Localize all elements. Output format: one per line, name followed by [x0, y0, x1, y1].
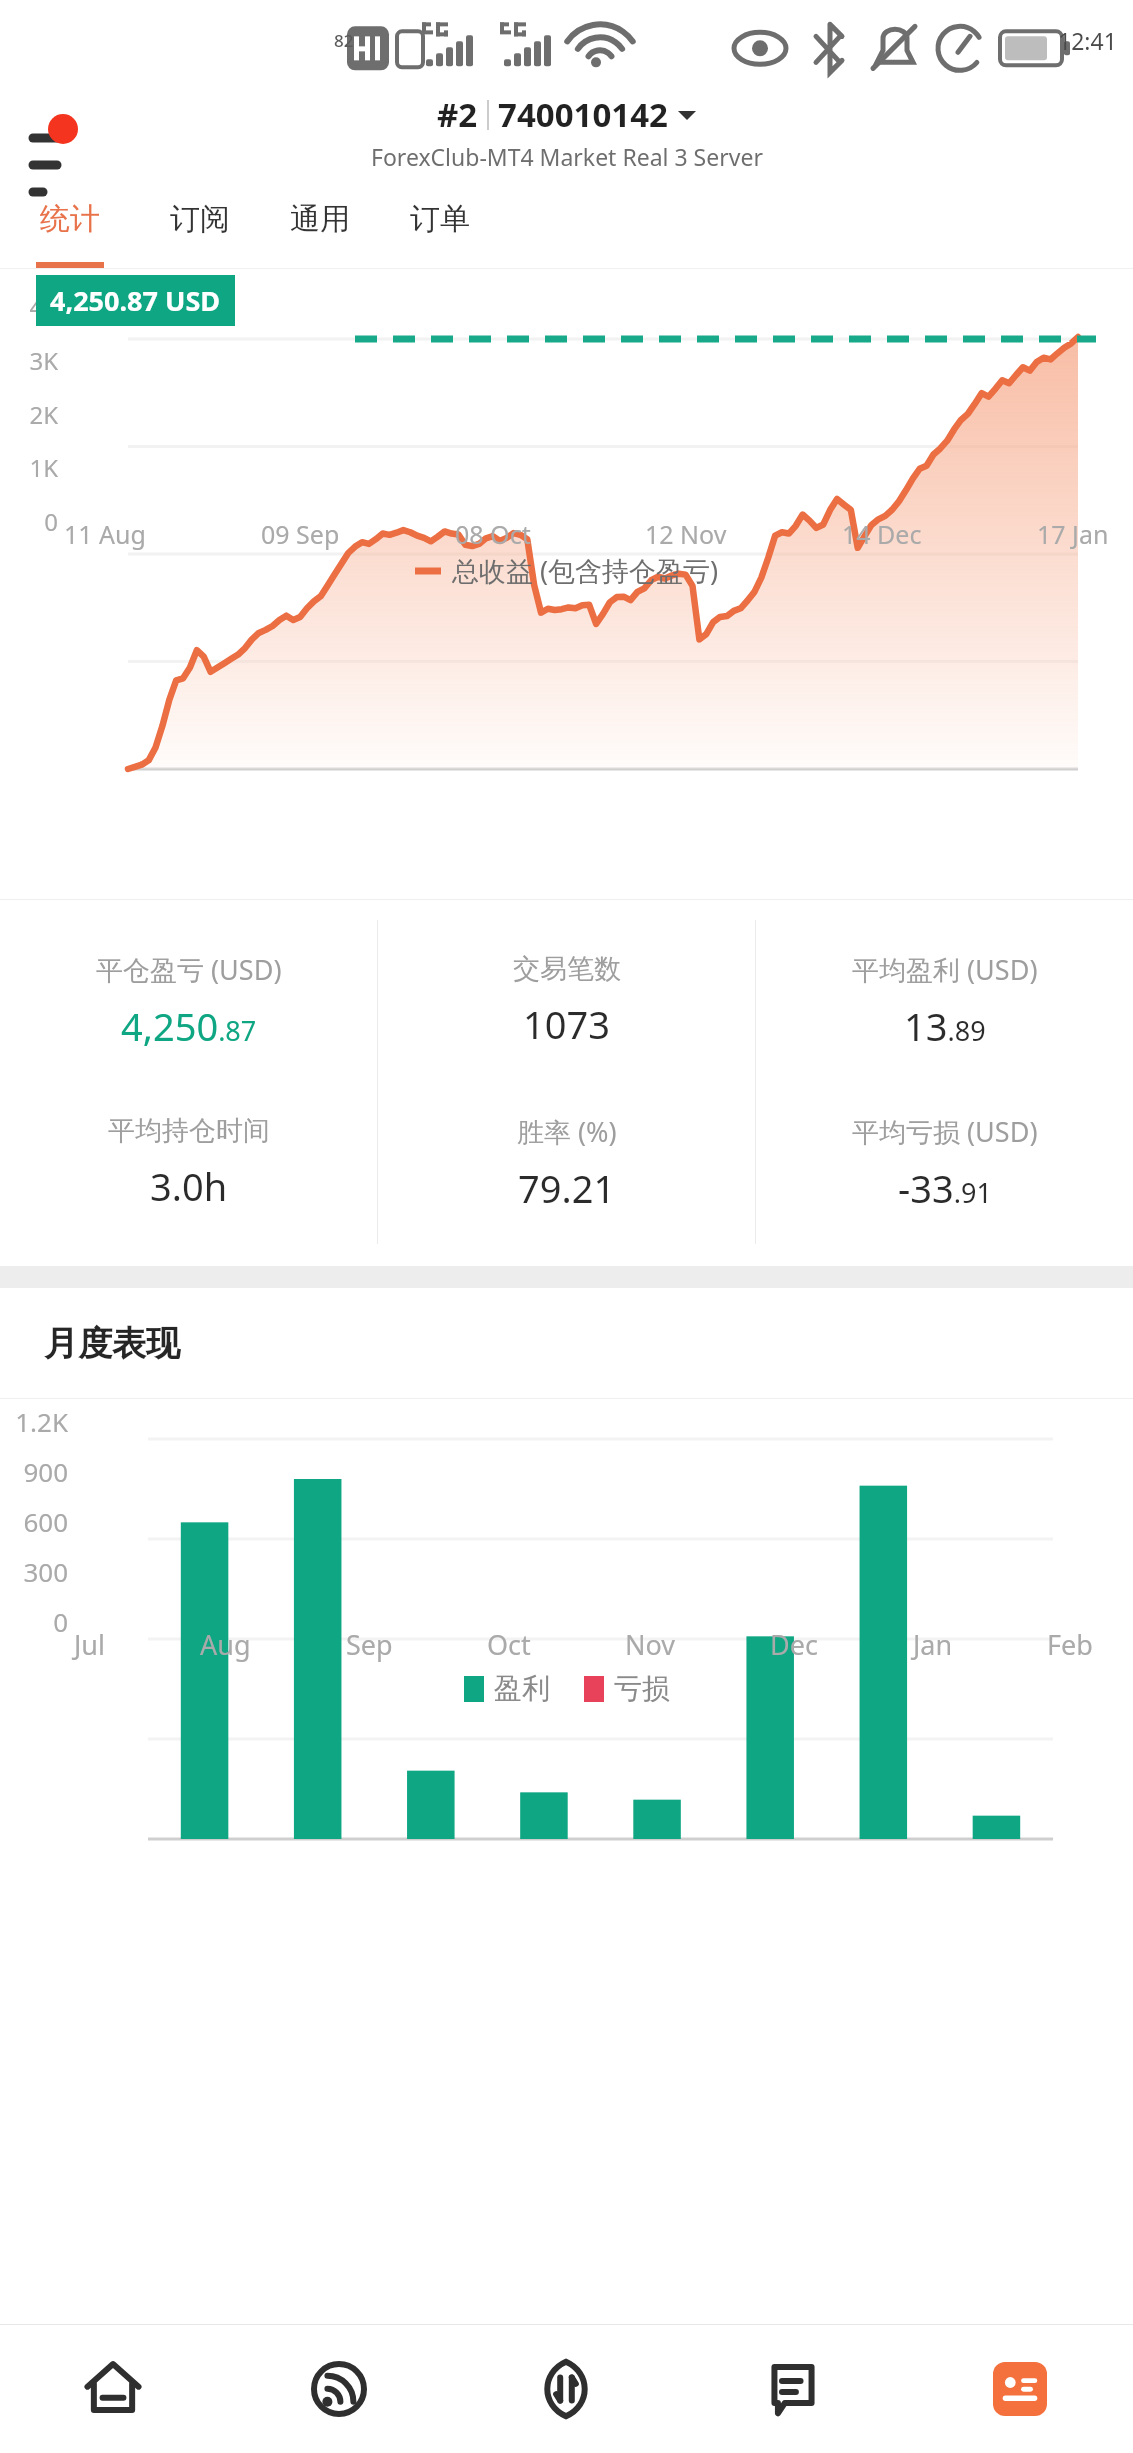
- button[interactable]: 订单: [380, 186, 500, 268]
- staticText: 11 Aug: [64, 517, 146, 551]
- staticText: Nov: [625, 1626, 676, 1663]
- staticText: 740010142: [498, 92, 668, 137]
- staticText: #2: [437, 92, 478, 137]
- staticText: 4K: [0, 290, 58, 323]
- staticText: 300: [0, 1554, 68, 1589]
- button[interactable]: Trade: [452, 2325, 679, 2453]
- staticText: 0: [0, 1604, 68, 1639]
- staticText: 4,250.87 USD: [50, 282, 221, 319]
- button[interactable]: #2: [437, 92, 696, 137]
- staticText: ForexClub-MT4 Market Real 3 Server: [371, 141, 763, 172]
- staticText: 月度表现: [44, 1322, 180, 1365]
- staticText: -33.91: [898, 1162, 992, 1214]
- button[interactable]: Messages: [679, 2325, 906, 2453]
- staticText: Sep: [346, 1626, 393, 1663]
- button[interactable]: Home: [0, 2325, 226, 2453]
- staticText: 3.0h: [150, 1160, 228, 1212]
- button[interactable]: Menu: [18, 96, 90, 168]
- staticText: 900: [0, 1454, 68, 1489]
- button[interactable]: 月度表现: [0, 1288, 1133, 1398]
- staticText: 平均亏损 (USD): [852, 1113, 1038, 1150]
- staticText: 3K: [0, 344, 58, 377]
- staticText: 0: [0, 505, 58, 538]
- button[interactable]: 胜率 (%): [378, 1082, 755, 1244]
- staticText: 13.89: [904, 1000, 986, 1052]
- button[interactable]: 平仓盈亏 (USD): [0, 920, 377, 1082]
- staticText: 胜率 (%): [517, 1113, 617, 1150]
- staticText: 17 Jan: [1037, 517, 1109, 551]
- staticText: Aug: [200, 1626, 251, 1663]
- staticText: 2K: [0, 398, 58, 431]
- staticText: Feb: [1047, 1626, 1093, 1663]
- button[interactable]: Profile: [906, 2325, 1133, 2453]
- staticText: 08 Oct: [455, 517, 531, 551]
- staticText: Jul: [74, 1626, 106, 1663]
- staticText: 1K: [0, 451, 58, 484]
- staticText: 4,250.87: [121, 1000, 257, 1052]
- staticText: 12 Nov: [645, 517, 727, 551]
- button[interactable]: 平均持仓时间: [0, 1082, 377, 1244]
- button[interactable]: 交易笔数: [378, 920, 755, 1082]
- staticText: 统计: [40, 200, 100, 238]
- staticText: 总收益 (包含持仓盈亏): [452, 552, 719, 589]
- staticText: 通用: [290, 200, 350, 238]
- staticText: 1073: [523, 998, 610, 1050]
- button[interactable]: 订阅: [140, 186, 260, 268]
- staticText: 交易笔数: [513, 952, 621, 986]
- staticText: 79.21: [518, 1162, 616, 1214]
- staticText: 09 Sep: [261, 517, 340, 551]
- button[interactable]: 平均亏损 (USD): [756, 1082, 1133, 1244]
- staticText: 1.2K: [0, 1404, 68, 1439]
- staticText: 订单: [410, 200, 470, 238]
- button[interactable]: Quotes: [226, 2325, 452, 2453]
- button[interactable]: 统计: [0, 186, 140, 268]
- button[interactable]: 平均盈利 (USD): [756, 920, 1133, 1082]
- staticText: Jan: [913, 1626, 953, 1663]
- staticText: 平均盈利 (USD): [852, 951, 1038, 988]
- staticText: 12:41: [1058, 25, 1117, 56]
- staticText: 订阅: [170, 200, 230, 238]
- staticText: Oct: [487, 1626, 531, 1663]
- staticText: 亏损: [614, 1671, 670, 1706]
- staticText: 平均持仓时间: [108, 1114, 270, 1148]
- staticText: 盈利: [494, 1671, 550, 1706]
- staticText: 平仓盈亏 (USD): [96, 951, 282, 988]
- staticText: Dec: [770, 1626, 818, 1663]
- staticText: 14 Dec: [842, 517, 922, 551]
- staticText: 600: [0, 1504, 68, 1539]
- button[interactable]: 通用: [260, 186, 380, 268]
- staticText: 82: [334, 29, 354, 52]
